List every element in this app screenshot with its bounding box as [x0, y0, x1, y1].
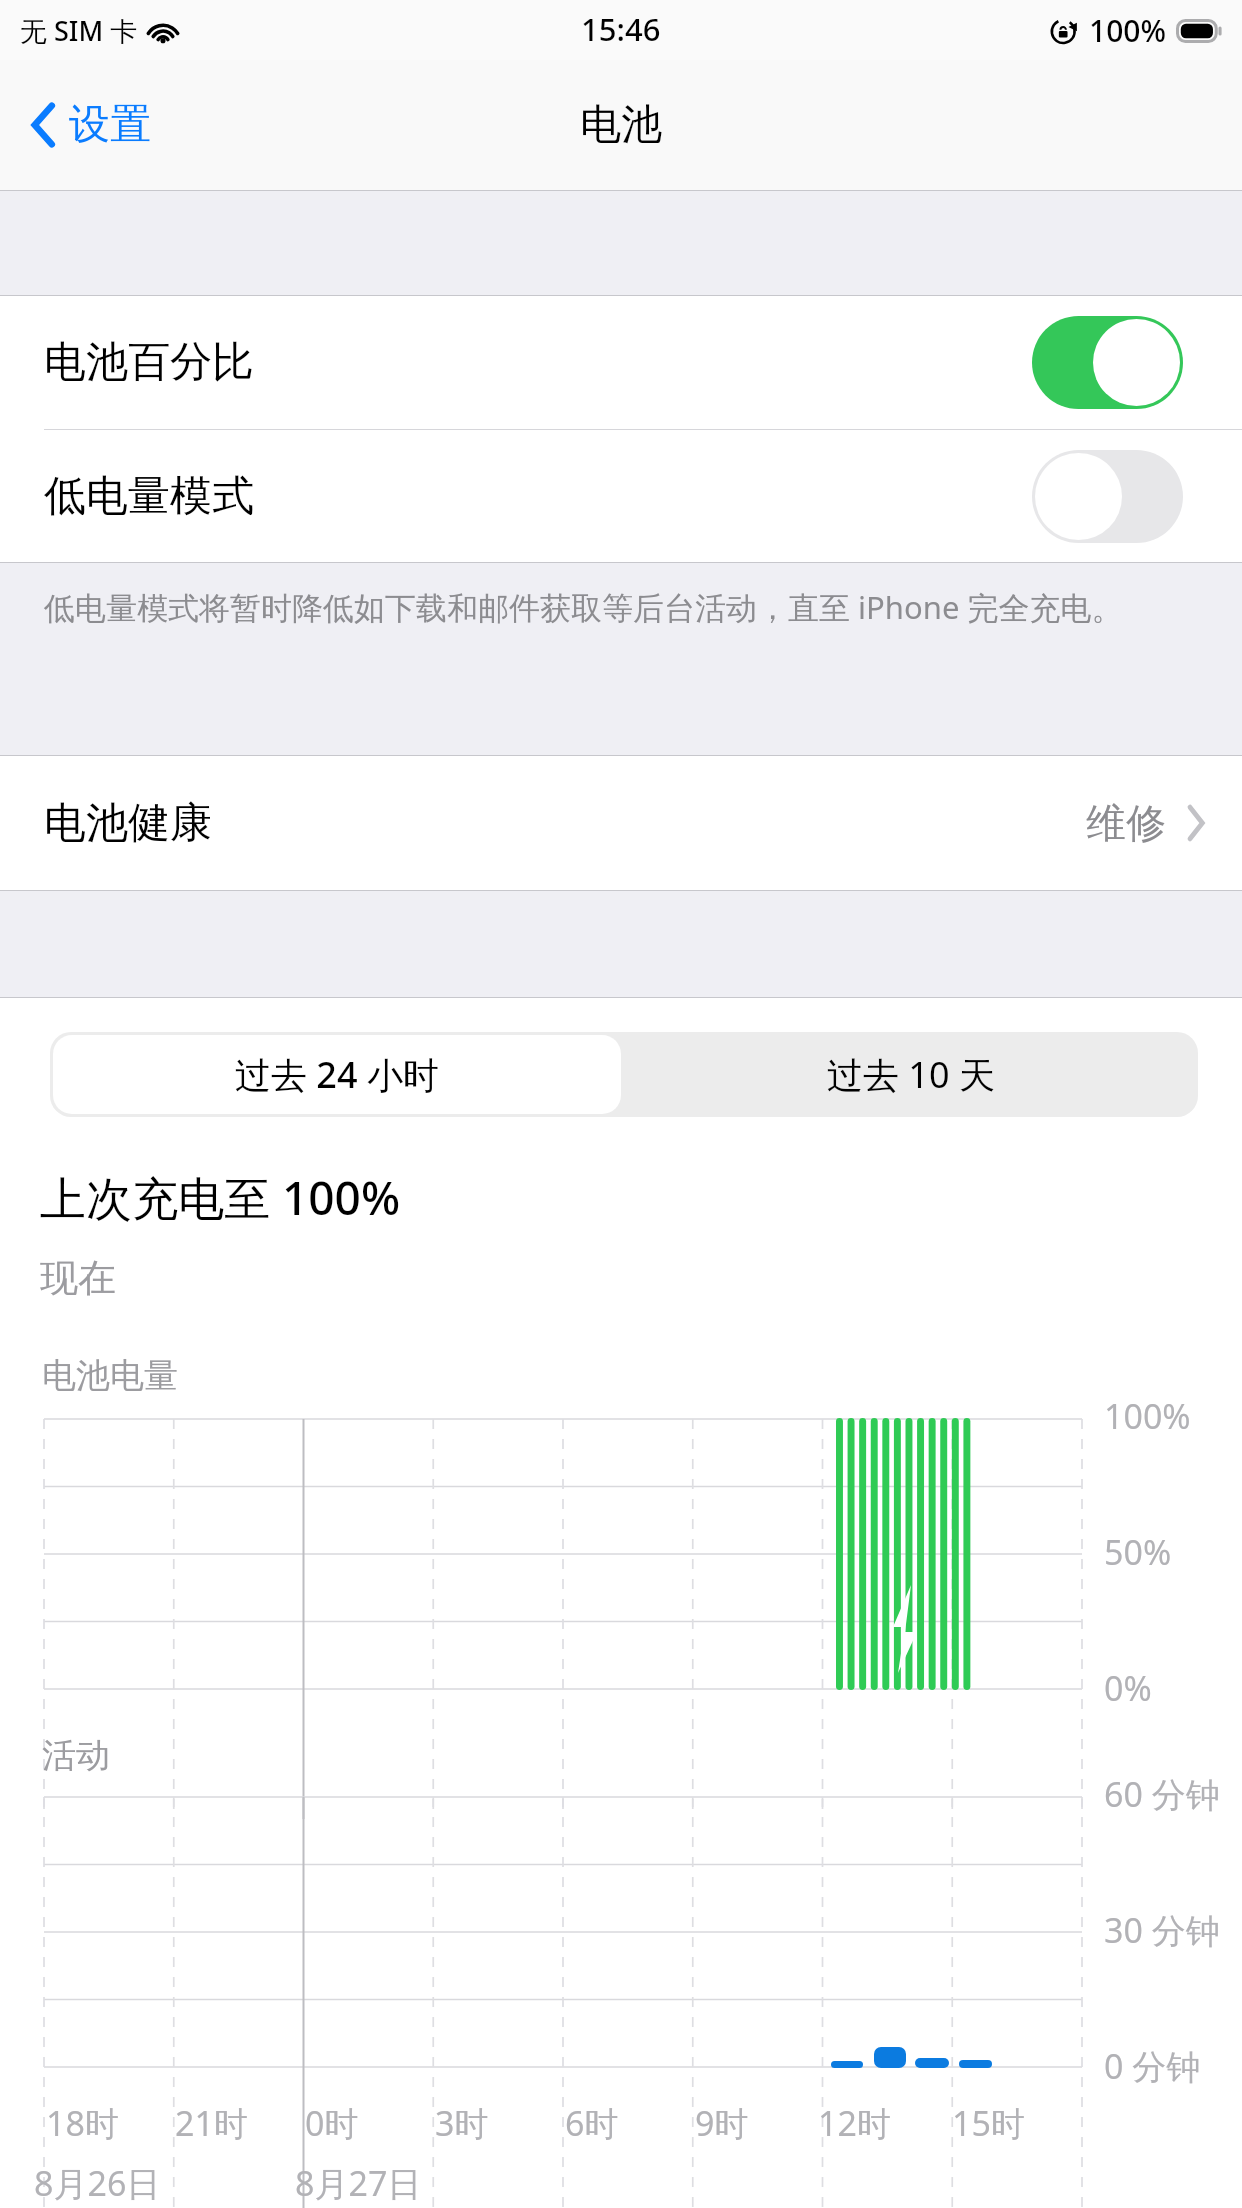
- button[interactable]: 返回 设置: [22, 85, 159, 165]
- button[interactable]: 过去 10 天: [624, 1032, 1198, 1117]
- staticText: 0时: [305, 2100, 359, 2146]
- staticText: 0%: [1104, 1665, 1152, 1711]
- staticText: 15时: [952, 2100, 1025, 2146]
- staticText: 过去 10 天: [827, 1050, 995, 1099]
- other: 电池百分比: [1032, 316, 1183, 409]
- staticText: 100%: [1104, 1393, 1191, 1439]
- staticText: 18时: [46, 2100, 119, 2146]
- staticText: 21时: [175, 2100, 248, 2146]
- staticText: 设置: [69, 99, 151, 151]
- staticText: 3时: [435, 2100, 489, 2146]
- staticText: 活动: [42, 1734, 110, 1777]
- button[interactable]: 过去 24 小时: [53, 1035, 621, 1114]
- staticText: 6时: [565, 2100, 619, 2146]
- staticText: 维修: [1086, 798, 1166, 848]
- staticText: 8月26日: [34, 2160, 161, 2206]
- staticText: 电池电量: [42, 1354, 178, 1397]
- staticText: 15:46: [581, 8, 661, 50]
- staticText: 100%: [1089, 10, 1167, 51]
- staticText: 过去 24 小时: [235, 1050, 439, 1099]
- staticText: 12时: [818, 2100, 891, 2146]
- staticText: 低电量模式: [44, 470, 254, 523]
- staticText: 电池: [580, 99, 662, 151]
- staticText: 上次充电至 100%: [40, 1166, 401, 1229]
- staticText: 9时: [695, 2100, 749, 2146]
- staticText: 60 分钟: [1104, 1771, 1220, 1817]
- button[interactable]: 电池健康: [0, 756, 1242, 890]
- staticText: 电池健康: [44, 797, 212, 850]
- button[interactable]: 低电量模式: [0, 430, 1242, 563]
- staticText: 0 分钟: [1104, 2043, 1201, 2089]
- button[interactable]: 电池百分比: [0, 296, 1242, 429]
- staticText: 8月27日: [295, 2160, 422, 2206]
- staticText: 低电量模式将暂时降低如下载和邮件获取等后台活动，直至 iPhone 完全充电。: [44, 586, 1123, 628]
- staticText: 无 SIM 卡: [20, 12, 138, 49]
- staticText: 现在: [40, 1254, 116, 1302]
- staticText: 50%: [1104, 1529, 1172, 1575]
- staticText: 30 分钟: [1104, 1907, 1220, 1953]
- other: 低电量模式: [1032, 450, 1183, 543]
- staticText: 电池百分比: [44, 336, 254, 389]
